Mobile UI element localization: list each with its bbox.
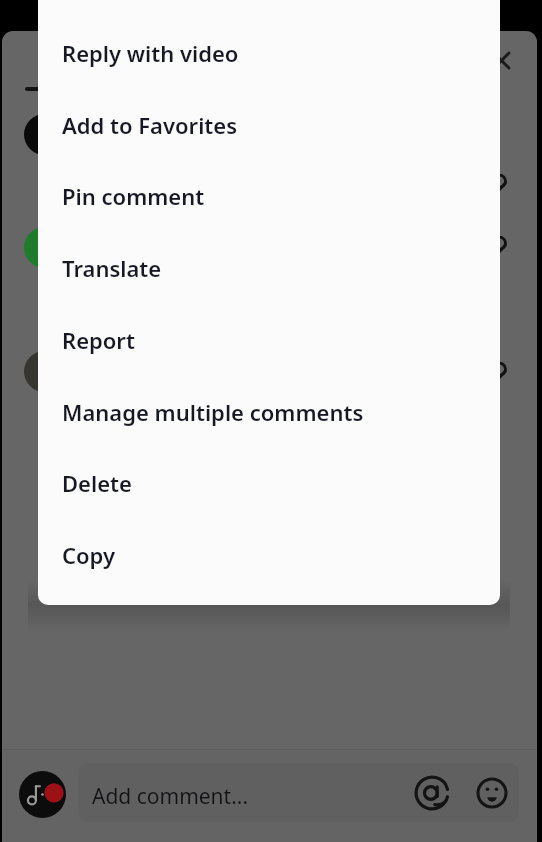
button[interactable]: Add comment... — [78, 763, 519, 822]
button[interactable]: Mention — [412, 773, 452, 813]
button[interactable]: Manage multiple comments — [38, 376, 500, 448]
staticText: Pin comment — [62, 181, 205, 211]
staticText: Copy — [62, 540, 115, 570]
button[interactable]: Pin comment — [38, 160, 500, 232]
staticText: Add comment... — [92, 782, 249, 811]
button[interactable]: Delete — [38, 447, 500, 519]
staticText: Delete — [62, 468, 132, 498]
button[interactable]: Reply with video — [38, 17, 500, 89]
button[interactable]: Translate — [38, 232, 500, 304]
staticText: Manage multiple comments — [62, 397, 364, 427]
staticText: Report — [62, 325, 135, 355]
button[interactable]: Close — [484, 43, 518, 77]
button[interactable]: Emoji — [473, 774, 511, 812]
button[interactable]: Add to Favorites — [38, 89, 500, 161]
button[interactable]: Report — [38, 304, 500, 376]
button[interactable]: Profile — [19, 771, 66, 818]
button[interactable]: Copy — [38, 519, 500, 591]
staticText: Add to Favorites — [62, 110, 238, 140]
staticText: Translate — [62, 253, 162, 283]
staticText: Reply with video — [62, 38, 239, 68]
